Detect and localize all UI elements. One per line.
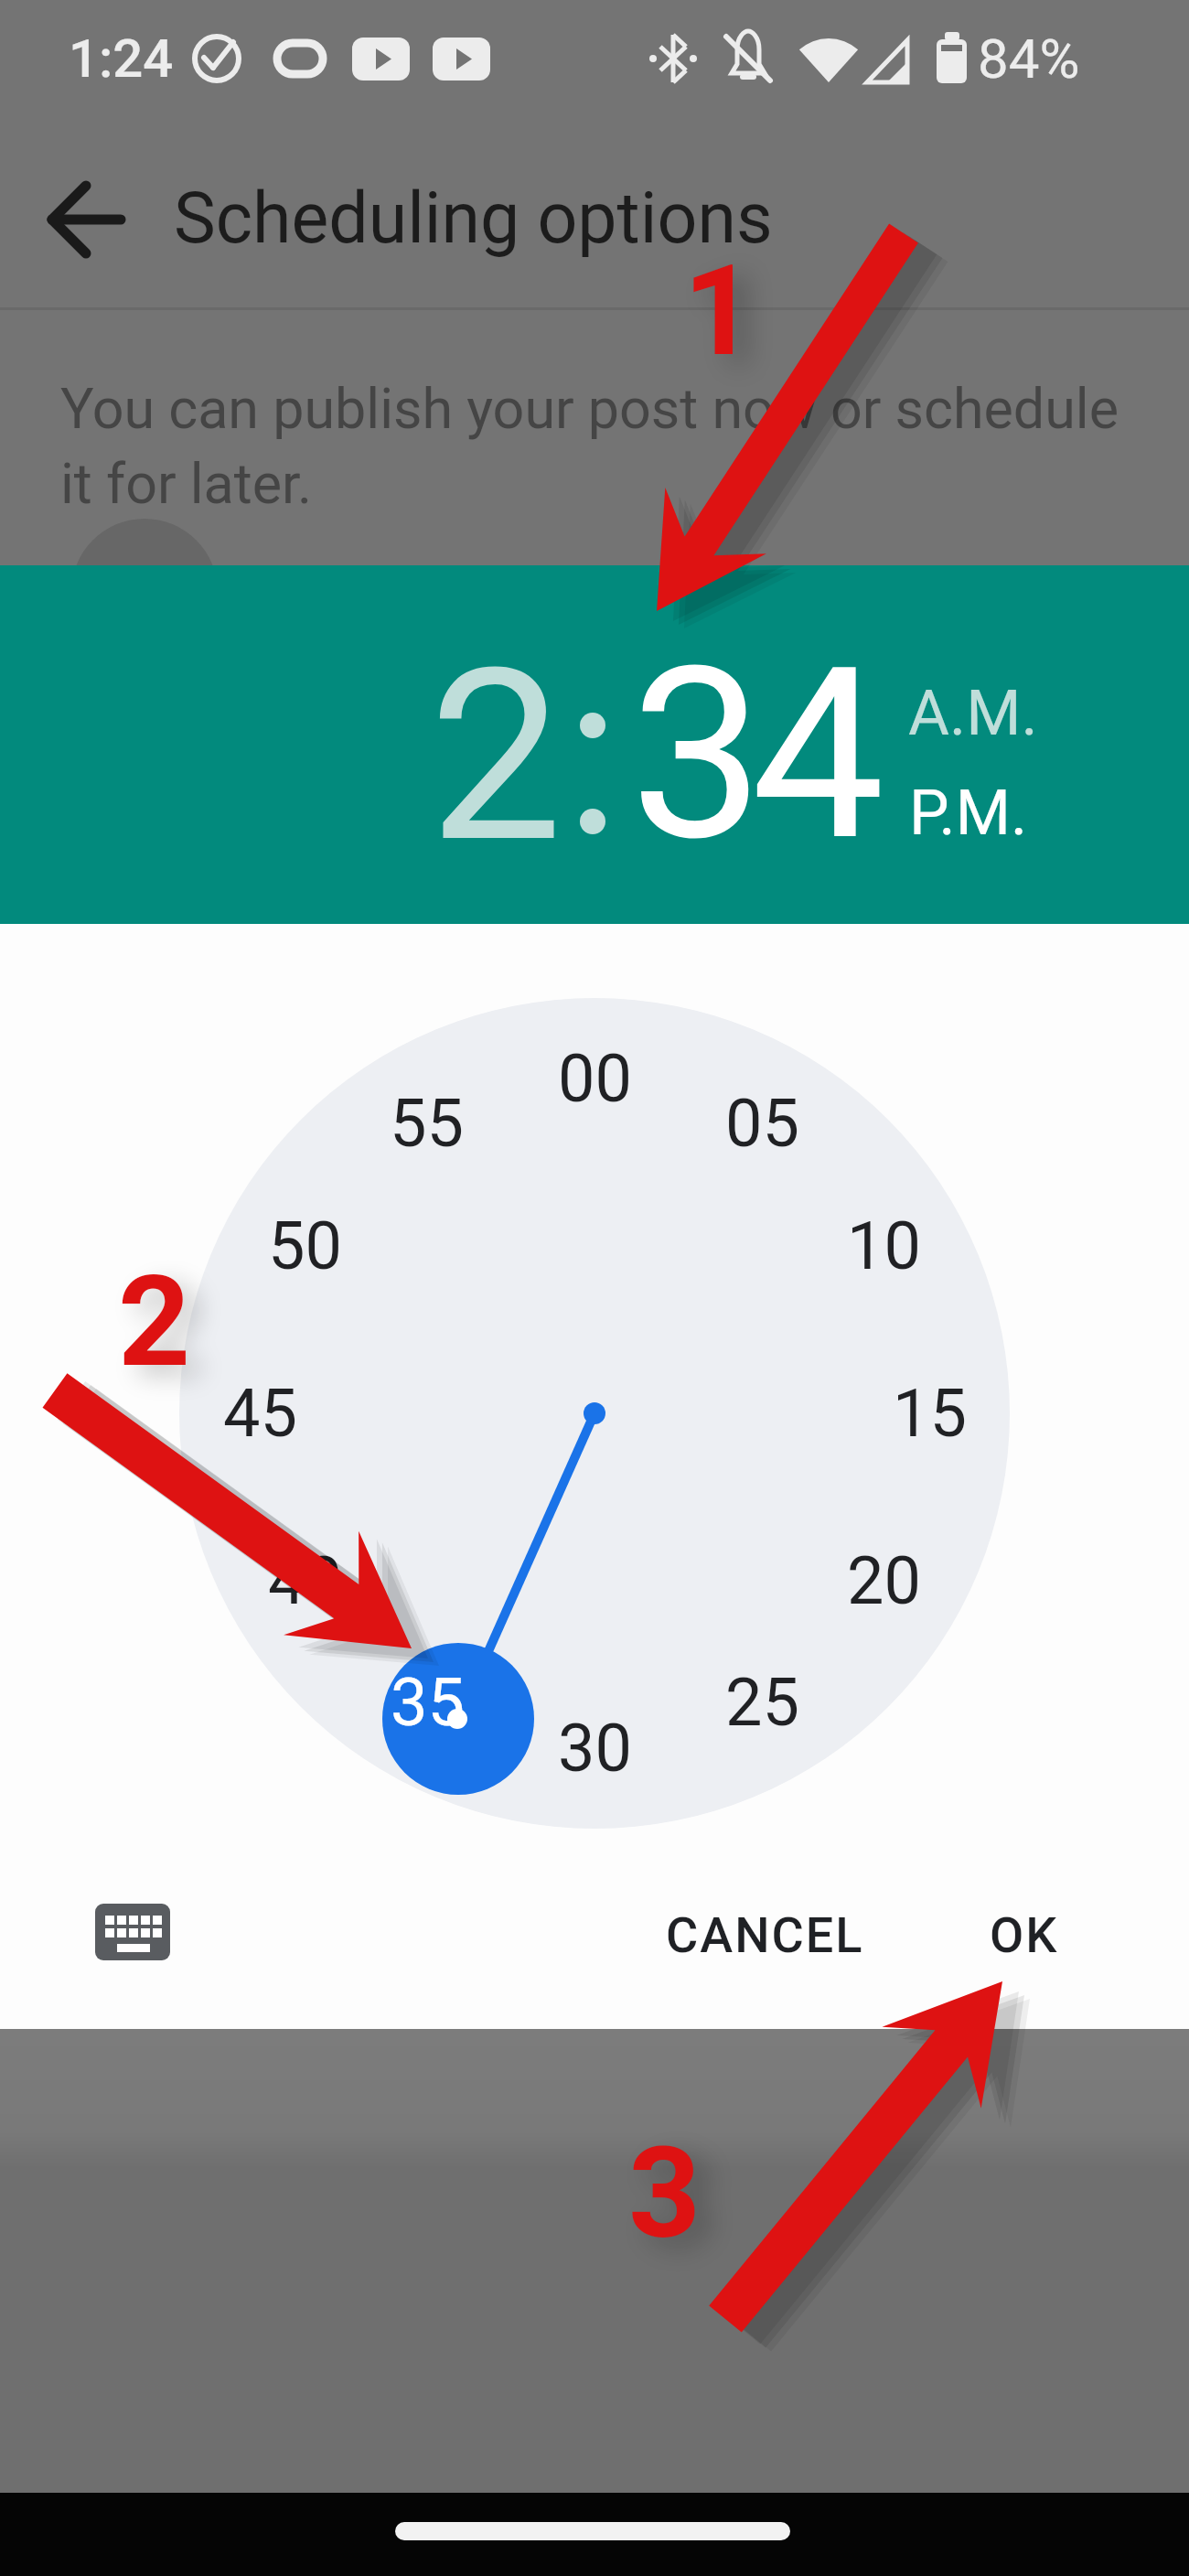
staticText: 50 — [268, 1207, 342, 1284]
staticText: 10 — [847, 1207, 921, 1284]
staticText: 55 — [390, 1085, 464, 1162]
staticText: Scheduling options — [174, 177, 773, 260]
staticText: 2 — [118, 1248, 191, 1396]
staticText: 1 — [683, 237, 756, 385]
staticText: 40 — [268, 1542, 342, 1619]
staticText: CANCEL — [666, 1906, 864, 1964]
staticText: 20 — [847, 1542, 921, 1619]
staticText: 2 — [429, 617, 563, 896]
button[interactable]: CANCEL — [641, 1889, 888, 1980]
staticText: OK — [990, 1906, 1059, 1964]
staticText: 05 — [725, 1085, 799, 1162]
staticText: 35 — [391, 1664, 465, 1741]
staticText: it for later. — [60, 451, 313, 516]
button[interactable] — [84, 1894, 181, 1972]
staticText: 30 — [558, 1710, 632, 1787]
staticText: 84% — [978, 27, 1080, 91]
staticText: 34 — [630, 616, 873, 895]
staticText: 00 — [558, 1040, 632, 1117]
staticText: 25 — [725, 1664, 799, 1741]
staticText: 1:24 — [69, 27, 174, 90]
button[interactable]: A.M. — [908, 676, 1038, 750]
staticText: 45 — [223, 1375, 297, 1452]
button[interactable]: P.M. — [909, 776, 1028, 850]
button[interactable]: OK — [942, 1889, 1107, 1980]
staticText: 15 — [893, 1375, 967, 1452]
button[interactable] — [37, 174, 137, 265]
staticText: You can publish your post now or schedul… — [60, 376, 1119, 441]
staticText: 3 — [628, 2120, 702, 2268]
